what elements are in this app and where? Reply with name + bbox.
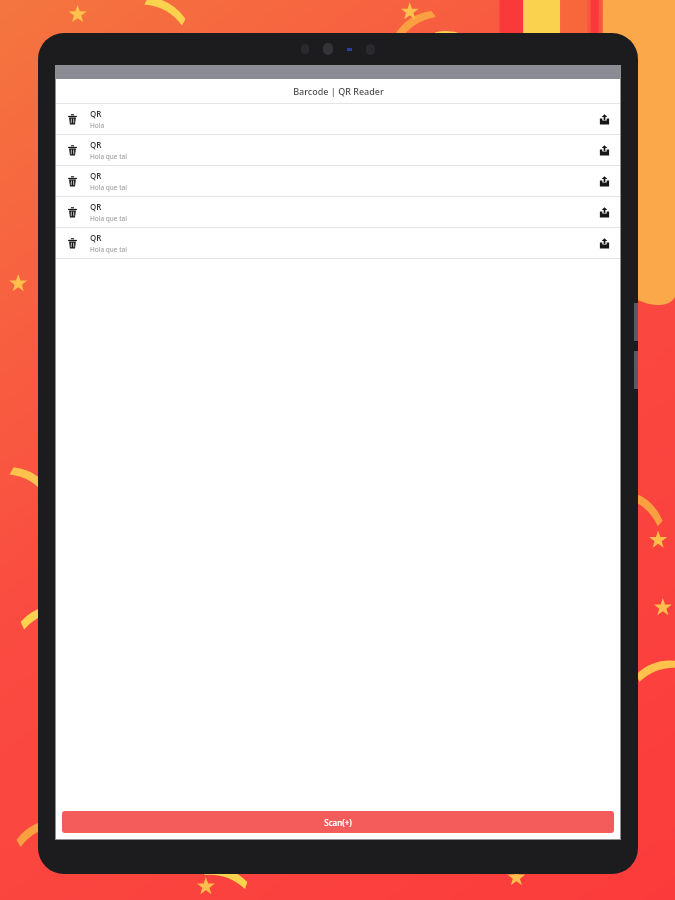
- button[interactable]: Scan(+): [62, 811, 614, 833]
- staticText: QR: [90, 232, 102, 243]
- staticText: Hola que tal: [90, 245, 127, 254]
- button[interactable]: Delete: [56, 197, 620, 227]
- staticText: Hola: [90, 121, 105, 130]
- staticText: Hola que tal: [90, 152, 127, 161]
- staticText: QR: [90, 201, 102, 212]
- button[interactable]: Delete: [63, 110, 81, 128]
- button[interactable]: Delete: [56, 228, 620, 258]
- button[interactable]: Share: [595, 110, 613, 128]
- staticText: Hola que tal: [90, 183, 127, 192]
- staticText: QR: [90, 170, 102, 181]
- staticText: Hola que tal: [90, 214, 127, 223]
- staticText: QR: [90, 108, 102, 119]
- button[interactable]: Share: [595, 234, 613, 252]
- button[interactable]: Delete: [63, 234, 81, 252]
- button[interactable]: Share: [595, 141, 613, 159]
- button[interactable]: Delete: [56, 135, 620, 165]
- staticText: QR: [90, 139, 102, 150]
- button[interactable]: Delete: [56, 166, 620, 196]
- staticText: Scan(+): [324, 817, 352, 828]
- button[interactable]: Delete: [63, 203, 81, 221]
- button[interactable]: Share: [595, 203, 613, 221]
- button[interactable]: Delete: [63, 172, 81, 190]
- button[interactable]: Share: [595, 172, 613, 190]
- button[interactable]: Delete: [63, 141, 81, 159]
- staticText: Barcode | QR Reader: [293, 85, 384, 97]
- button[interactable]: Delete: [56, 104, 620, 134]
